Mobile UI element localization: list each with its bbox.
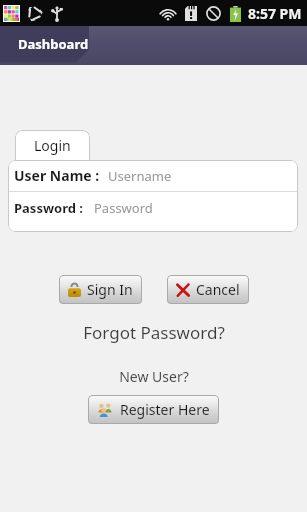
staticText: Register Here	[120, 400, 210, 419]
staticText: Sign In	[87, 280, 133, 299]
staticText: New User?	[119, 367, 189, 386]
button[interactable]: Cancel	[167, 275, 249, 304]
staticText: User Name :	[14, 166, 100, 185]
staticText: Forgot Password?	[83, 321, 225, 344]
button[interactable]: User Name :	[8, 160, 298, 191]
staticText: Username	[108, 167, 172, 185]
button[interactable]: Forgot Password?	[0, 321, 307, 344]
button[interactable]: Login	[15, 130, 90, 161]
staticText: 8:57 PM	[248, 4, 302, 23]
button[interactable]: Password :	[8, 192, 298, 223]
staticText: Login	[34, 136, 71, 155]
button[interactable]: Dashboard	[18, 35, 89, 53]
staticText: Password	[94, 199, 153, 217]
staticText: Cancel	[196, 280, 240, 299]
staticText: Dashboard	[18, 35, 89, 53]
button[interactable]: Register Here	[88, 395, 219, 424]
staticText: Password :	[14, 199, 83, 217]
button[interactable]: Sign In	[59, 275, 142, 304]
